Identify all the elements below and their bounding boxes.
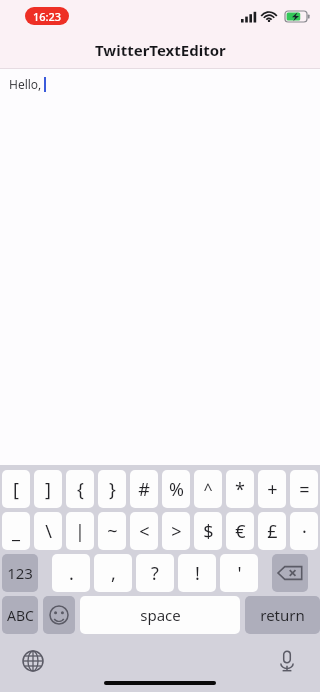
staticText: € bbox=[235, 519, 246, 544]
staticText: ^ bbox=[203, 478, 213, 500]
button[interactable]: \ bbox=[34, 512, 62, 550]
staticText: } bbox=[109, 477, 116, 502]
button[interactable]: | bbox=[66, 512, 94, 550]
staticText: > bbox=[171, 519, 182, 544]
staticText: [ bbox=[13, 477, 19, 502]
staticText: _ bbox=[12, 519, 20, 544]
staticText: ABC bbox=[7, 606, 34, 625]
staticText: 123 bbox=[7, 563, 33, 583]
button[interactable]: space bbox=[80, 596, 240, 634]
staticText: , bbox=[111, 561, 116, 586]
button[interactable]: Change keyboard bbox=[18, 646, 48, 676]
button[interactable]: # bbox=[130, 470, 158, 508]
button[interactable]: { bbox=[66, 470, 94, 508]
button[interactable]: Emoji bbox=[43, 596, 75, 634]
staticText: { bbox=[77, 477, 84, 502]
staticText: | bbox=[75, 519, 85, 544]
button[interactable]: ? bbox=[136, 554, 174, 592]
button[interactable]: ] bbox=[34, 470, 62, 508]
staticText: ? bbox=[151, 561, 159, 586]
button[interactable]: ~ bbox=[98, 512, 126, 550]
staticText: ~ bbox=[107, 519, 118, 544]
button[interactable]: £ bbox=[258, 512, 286, 550]
staticText: # bbox=[138, 477, 150, 502]
button[interactable]: ^ bbox=[194, 470, 222, 508]
staticText: . bbox=[69, 561, 74, 586]
staticText: < bbox=[139, 519, 150, 544]
staticText: % bbox=[169, 477, 184, 502]
staticText: · bbox=[302, 519, 307, 544]
staticText: ' bbox=[237, 561, 242, 586]
staticText: = bbox=[299, 477, 310, 502]
button[interactable]: return bbox=[245, 596, 320, 634]
button[interactable]: > bbox=[162, 512, 190, 550]
button[interactable]: . bbox=[52, 554, 90, 592]
button[interactable]: _ bbox=[2, 512, 30, 550]
button[interactable]: · bbox=[290, 512, 318, 550]
staticText: ] bbox=[45, 477, 51, 502]
staticText: space bbox=[140, 605, 181, 625]
button[interactable]: Backspace bbox=[272, 554, 308, 592]
button[interactable]: + bbox=[258, 470, 286, 508]
button[interactable]: ! bbox=[178, 554, 216, 592]
staticText: \ bbox=[45, 519, 52, 544]
button[interactable]: * bbox=[226, 470, 254, 508]
staticText: + bbox=[267, 477, 278, 502]
button[interactable]: € bbox=[226, 512, 254, 550]
button[interactable]: [ bbox=[2, 470, 30, 508]
staticText: 16:23 bbox=[33, 9, 62, 24]
button[interactable]: , bbox=[94, 554, 132, 592]
staticText: £ bbox=[267, 519, 278, 544]
button[interactable]: = bbox=[290, 470, 318, 508]
staticText: TwitterTextEditor bbox=[95, 40, 226, 60]
button[interactable]: Dictation bbox=[272, 646, 302, 676]
button[interactable]: ABC bbox=[2, 596, 38, 634]
button[interactable]: 123 bbox=[2, 554, 38, 592]
staticText: return bbox=[260, 605, 305, 625]
button[interactable]: % bbox=[162, 470, 190, 508]
button[interactable]: < bbox=[130, 512, 158, 550]
staticText: * bbox=[235, 477, 245, 502]
staticText: ! bbox=[195, 561, 200, 586]
staticText: $ bbox=[203, 519, 214, 544]
button[interactable]: ' bbox=[220, 554, 258, 592]
button[interactable]: } bbox=[98, 470, 126, 508]
button[interactable]: $ bbox=[194, 512, 222, 550]
staticText: Hello, bbox=[9, 76, 42, 92]
